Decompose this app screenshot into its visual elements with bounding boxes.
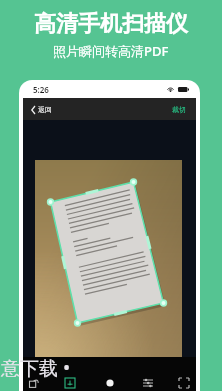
staticText: 照片瞬间转高清PDF — [53, 42, 169, 60]
button[interactable]: Brightness — [98, 371, 122, 391]
staticText: 5:26 — [33, 84, 49, 95]
staticText: 返回 — [38, 105, 52, 114]
button[interactable]: Filters — [136, 371, 160, 391]
button[interactable]: Crop — [172, 371, 196, 391]
staticText: 裁切 — [172, 105, 186, 114]
button[interactable]: Enhance — [58, 371, 82, 391]
staticText: 意下载 • NBWYXH.COM.CN — [1, 355, 222, 381]
staticText: 高清手机扫描仪 — [34, 10, 188, 38]
button[interactable]: Rotate — [22, 371, 46, 391]
button[interactable]: 裁切 — [164, 101, 196, 118]
button[interactable]: 返回 — [23, 101, 60, 118]
